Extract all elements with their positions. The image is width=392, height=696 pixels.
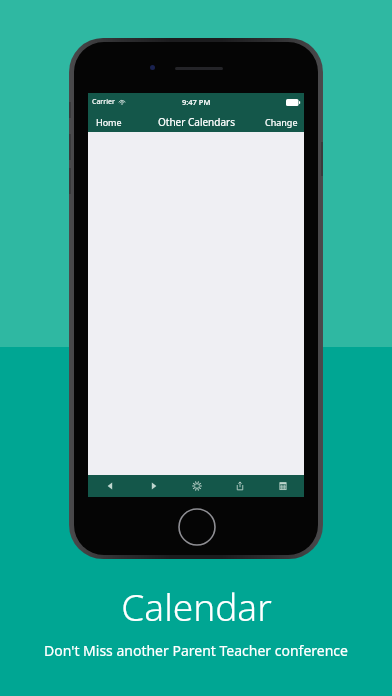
staticText: 9:47 PM	[182, 97, 211, 107]
button[interactable]: Calendar	[261, 475, 304, 497]
staticText: Home	[96, 116, 122, 128]
button[interactable]: Back	[88, 475, 132, 497]
staticText: Other Calendars	[158, 115, 235, 129]
staticText: Carrier	[92, 97, 115, 107]
staticText: Calendar	[121, 581, 272, 631]
button[interactable]: Home button	[178, 508, 216, 546]
button[interactable]: Forward	[132, 475, 175, 497]
staticText: Don't Miss another Parent Teacher confer…	[44, 641, 348, 660]
button[interactable]: Loading	[175, 475, 218, 497]
staticText: Change	[265, 116, 298, 128]
button[interactable]: Home	[88, 111, 130, 132]
button[interactable]: Share	[218, 475, 261, 497]
button[interactable]: Change	[259, 111, 304, 132]
